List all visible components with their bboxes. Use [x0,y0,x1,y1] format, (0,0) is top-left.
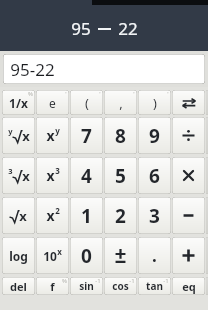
staticText: . [152,244,157,267]
staticText: 10 [43,248,57,264]
button[interactable]: key [206,277,208,295]
button[interactable]: sin [70,277,103,295]
staticText: eq [182,279,196,294]
button[interactable]: 2 [104,197,137,234]
staticText: 22 [118,17,138,40]
staticText: ' [65,90,67,98]
staticText: 6 [149,163,160,189]
button[interactable]: key [206,197,208,234]
staticText: ' [133,90,135,98]
button[interactable]: ( [70,90,103,115]
staticText: 1 [81,203,92,229]
button[interactable]: tan [138,277,171,295]
staticText: x [46,166,55,185]
button[interactable]: eq [172,277,205,295]
staticText: log [9,248,28,264]
button[interactable]: key [206,117,208,154]
button[interactable]: 95-22 [3,54,205,84]
staticText: x [19,207,27,225]
staticText: 4 [81,163,92,189]
staticText: tan [146,279,163,293]
button[interactable]: key [206,237,208,274]
staticText: 8 [115,123,126,149]
button[interactable]: key [206,90,208,115]
button[interactable]: minus [172,197,205,234]
button[interactable]: cos [104,277,137,295]
staticText: ( [85,94,89,112]
staticText: x [22,167,30,185]
staticText: % [62,277,67,285]
button[interactable]: square root x [2,197,35,234]
staticText: -1 [163,277,169,285]
button[interactable]: 0 [70,237,103,274]
staticText: 7 [81,123,92,149]
button[interactable]: 7 [70,117,103,154]
staticText: -1 [129,277,135,285]
staticText: 2 [55,205,60,216]
staticText: ' [99,90,101,98]
button[interactable]: swap [172,90,205,115]
button[interactable]: 9 [138,117,171,154]
staticText: ' [167,90,169,98]
button[interactable]: f [36,277,69,295]
staticText: sin [79,279,94,293]
button[interactable]: , [104,90,137,115]
button[interactable]: 6 [138,157,171,194]
staticText: 5 [115,163,126,189]
button[interactable]: 1 [70,197,103,234]
button[interactable]: x^y [36,117,69,154]
staticText: x [46,126,55,145]
staticText: f [50,279,55,294]
staticText: , [119,94,123,112]
staticText: 0 [81,243,92,269]
button[interactable]: log [2,237,35,274]
button[interactable]: divide [172,117,205,154]
staticText: 2 [115,203,126,229]
button[interactable]: 8 [104,117,137,154]
button[interactable]: . [138,237,171,274]
button[interactable]: multiply [172,157,205,194]
button[interactable]: cube root x [2,157,35,194]
staticText: 9 [149,123,160,149]
staticText: % [28,90,33,98]
button[interactable]: del [2,277,35,295]
staticText: 3 [55,165,60,176]
button[interactable]: y root x [2,117,35,154]
staticText: del [10,279,27,294]
staticText: 3 [8,166,13,176]
staticText: y [8,126,13,136]
staticText: 1/x [9,95,28,111]
staticText: -1 [95,277,101,285]
button[interactable]: key [206,157,208,194]
button[interactable]: x^3 [36,157,69,194]
button[interactable]: x squared [36,197,69,234]
staticText: 95 [71,17,91,40]
staticText: ) [153,94,157,112]
staticText: x [22,127,30,145]
button[interactable]: 1/x [2,90,35,115]
staticText: x [57,246,62,257]
button[interactable]: 10^x [36,237,69,274]
button[interactable]: e [36,90,69,115]
staticText: y [55,125,60,136]
button[interactable]: ) [138,90,171,115]
staticText: cos [112,279,129,293]
button[interactable]: 4 [70,157,103,194]
button[interactable]: 3 [138,197,171,234]
button[interactable]: 5 [104,157,137,194]
button[interactable]: plus minus [104,237,137,274]
staticText: 95-22 [10,58,55,81]
staticText: 3 [149,203,160,229]
staticText: x [46,206,55,225]
staticText: e [49,95,56,111]
button[interactable]: plus [172,237,205,274]
